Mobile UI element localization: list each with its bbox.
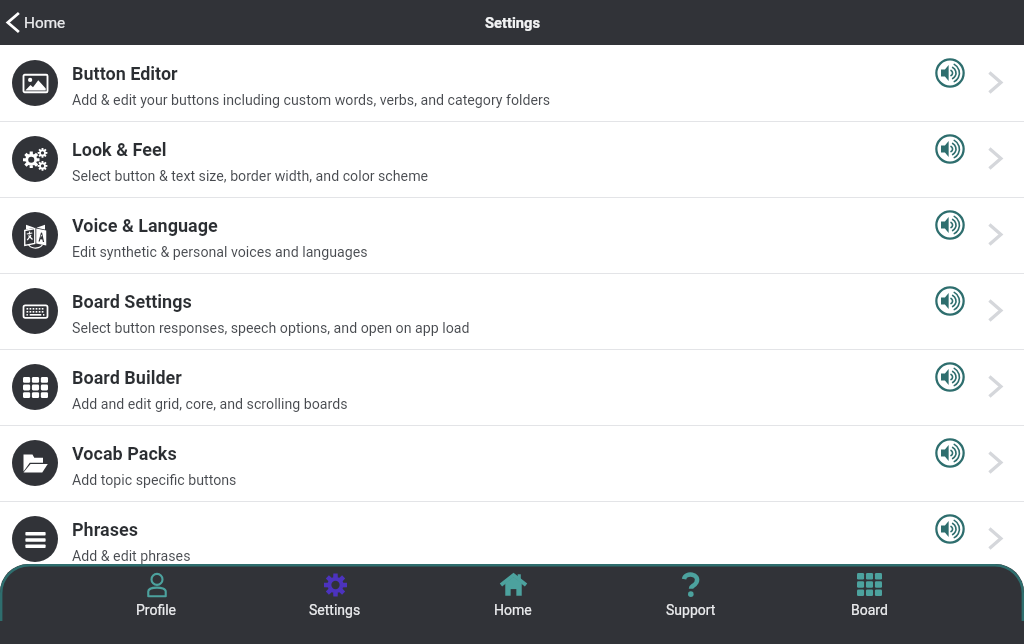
staticText: Button Editor <box>72 63 178 84</box>
button[interactable]: Profile <box>67 564 246 622</box>
button[interactable]: Button Editor <box>0 45 1024 121</box>
staticText: Select button & text size, border width,… <box>72 168 429 185</box>
button[interactable]: Speak Voice & Language <box>930 205 970 245</box>
button[interactable]: Look & Feel <box>0 121 1024 197</box>
staticText: Add and edit grid, core, and scrolling b… <box>72 396 348 413</box>
button[interactable]: Vocab Packs <box>0 425 1024 501</box>
staticText: Look & Feel <box>72 139 167 160</box>
button[interactable]: Speak Vocab Packs <box>930 433 970 473</box>
button[interactable]: Speak Board Builder <box>930 357 970 397</box>
staticText: Board <box>851 602 888 618</box>
button[interactable]: Support <box>602 564 780 622</box>
staticText: Settings <box>309 602 361 618</box>
staticText: Phrases <box>72 519 138 540</box>
button[interactable]: Board Settings <box>0 273 1024 349</box>
button[interactable]: Speak Board Settings <box>930 281 970 321</box>
staticText: Add & edit phrases <box>72 548 191 565</box>
button[interactable]: Board Builder <box>0 349 1024 425</box>
staticText: Edit synthetic & personal voices and lan… <box>72 244 368 261</box>
button[interactable]: Home <box>0 12 78 33</box>
staticText: Voice & Language <box>72 215 218 236</box>
button[interactable]: Phrases <box>0 501 1024 577</box>
staticText: Board Builder <box>72 367 182 388</box>
staticText: Select button responses, speech options,… <box>72 320 470 337</box>
staticText: Home <box>24 14 66 32</box>
staticText: Vocab Packs <box>72 443 177 464</box>
button[interactable]: Settings <box>246 564 424 622</box>
button[interactable]: Home <box>424 564 602 622</box>
staticText: Home <box>494 602 532 618</box>
staticText: Add topic specific buttons <box>72 472 237 489</box>
staticText: Settings <box>485 14 540 31</box>
button[interactable]: Board <box>780 564 958 622</box>
button[interactable]: Speak Look & Feel <box>930 129 970 169</box>
staticText: Support <box>666 602 716 618</box>
staticText: Board Settings <box>72 291 192 312</box>
staticText: Profile <box>136 602 177 618</box>
staticText: Add & edit your buttons including custom… <box>72 92 551 109</box>
button[interactable]: Speak Phrases <box>930 509 970 549</box>
button[interactable]: Voice & Language <box>0 197 1024 273</box>
button[interactable]: Speak Button Editor <box>930 53 970 93</box>
